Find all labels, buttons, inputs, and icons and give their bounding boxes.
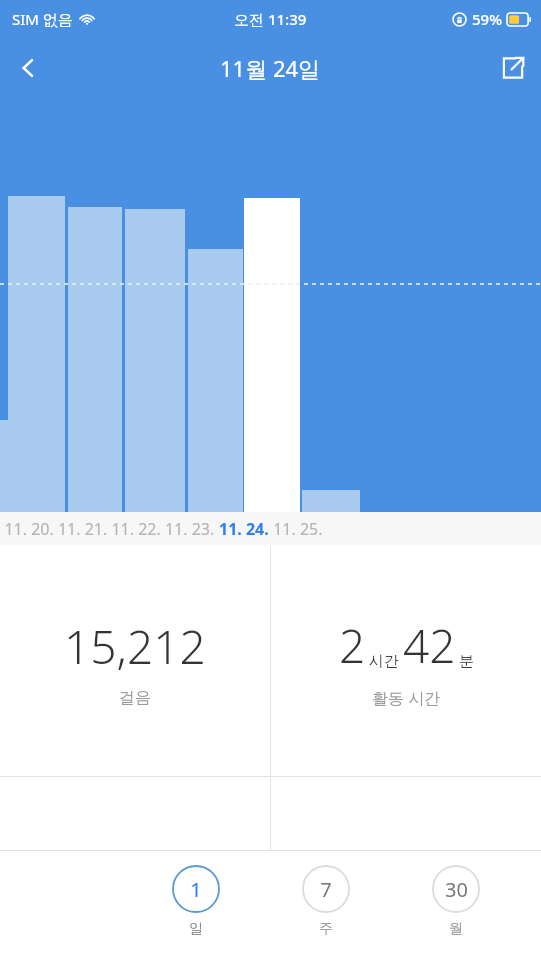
staticText: . 11. 20. 11. 21. 11. 22. 11. 23. <box>0 518 219 540</box>
button[interactable]: Share <box>485 40 541 96</box>
staticText: 일 <box>189 920 203 938</box>
staticText: 11. 25. <box>269 518 323 540</box>
button[interactable]: 7 <box>296 865 356 938</box>
button[interactable]: Back <box>0 40 56 96</box>
button[interactable]: 15,212 <box>0 545 270 777</box>
staticText: 활동 시간 <box>372 687 441 709</box>
staticText: 오전 11:39 <box>234 9 307 29</box>
staticText: 11. 24. <box>219 518 269 540</box>
staticText: 2 <box>339 614 366 677</box>
staticText: 주 <box>319 920 333 938</box>
staticText: 59% <box>472 9 502 29</box>
button[interactable]: 30 <box>426 865 486 938</box>
staticText: 월 <box>449 920 463 938</box>
staticText: 7 <box>320 876 332 903</box>
staticText: 걸음 <box>119 688 151 708</box>
staticText: 분 <box>459 652 474 671</box>
staticText: 11월 24일 <box>220 53 321 83</box>
staticText: 1 <box>190 876 202 903</box>
staticText: 30 <box>445 876 468 903</box>
staticText: 42 <box>403 614 456 677</box>
staticText: SIM 없음 <box>12 9 73 29</box>
button[interactable]: 2 <box>271 545 541 777</box>
button[interactable]: 1 <box>166 865 226 938</box>
staticText: 15,212 <box>64 615 206 678</box>
staticText: 시간 <box>369 652 399 671</box>
